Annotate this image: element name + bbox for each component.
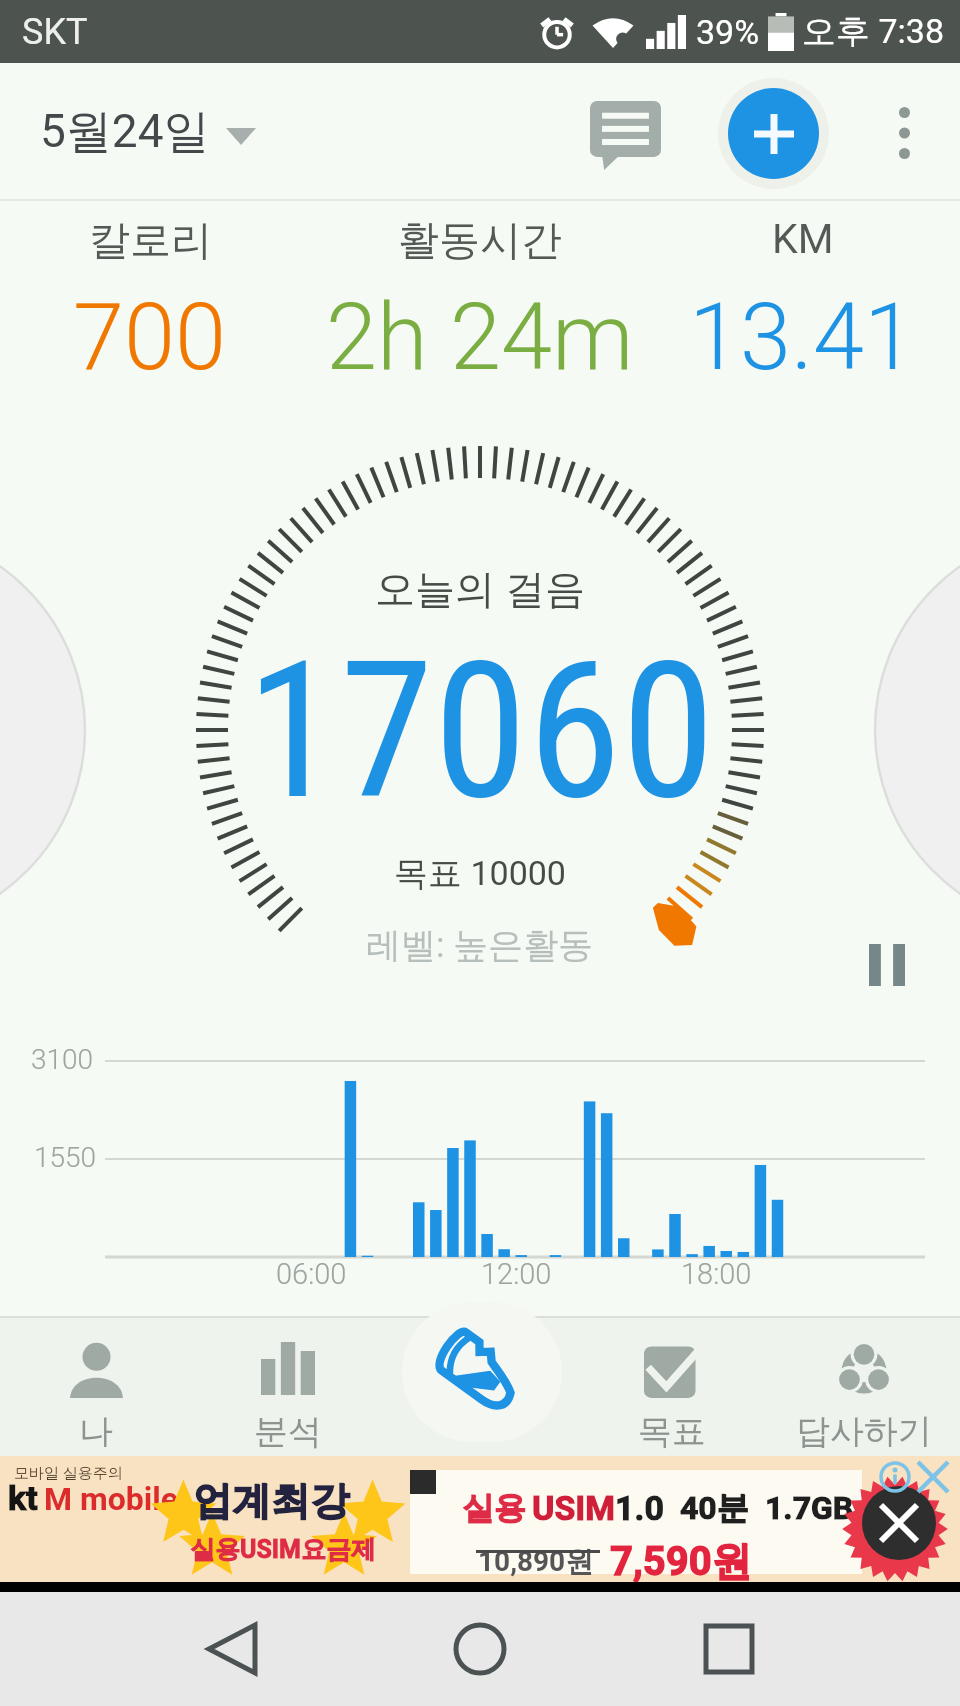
staticText: 활동시간 (398, 215, 562, 267)
button[interactable]: Close ad (862, 1486, 936, 1560)
button[interactable]: 분석 (192, 1316, 384, 1456)
staticText: kt (8, 1478, 38, 1518)
staticText: 목표 10000 (394, 852, 566, 895)
button[interactable]: 활동시간 (320, 201, 640, 400)
button[interactable]: Steps (402, 1302, 562, 1442)
staticText: USIM (532, 1488, 615, 1528)
staticText: 레벨: 높은활동 (366, 923, 594, 967)
button[interactable]: Back (185, 1603, 277, 1695)
staticText: 업계최강 (193, 1476, 349, 1525)
button[interactable]: More options (864, 89, 944, 177)
staticText: 12:00 (481, 1257, 552, 1291)
staticText: 나 (79, 1410, 113, 1453)
staticText: 목표 (638, 1410, 706, 1453)
button[interactable]: Home (434, 1603, 526, 1695)
staticText: 1.0 (615, 1488, 664, 1528)
staticText: SKT (22, 11, 88, 53)
staticText: 1550 (34, 1141, 97, 1174)
staticText: 5월24일 (40, 103, 210, 161)
button[interactable]: Pause (850, 928, 924, 1002)
button[interactable]: 칼로리 (0, 201, 300, 400)
button[interactable]: Advertisement (0, 1456, 960, 1582)
staticText: 40분 (680, 1488, 749, 1528)
button[interactable]: 나 (0, 1316, 192, 1456)
button[interactable]: KM (645, 201, 960, 400)
staticText: M mobile (44, 1480, 179, 1518)
staticText: 답사하기 (796, 1410, 932, 1453)
staticText: 분석 (254, 1410, 322, 1453)
button[interactable]: Recents (683, 1603, 775, 1695)
button[interactable]: Ad info (876, 1458, 914, 1496)
button[interactable]: 답사하기 (768, 1316, 960, 1456)
staticText: KM (772, 215, 834, 263)
staticText: 13.41 (689, 284, 916, 392)
button[interactable]: 5월24일 (24, 87, 272, 177)
staticText: 7,590원 (610, 1536, 752, 1586)
staticText: 실용 (462, 1488, 526, 1528)
button[interactable]: Add (718, 78, 829, 189)
staticText: 39% (696, 12, 760, 52)
staticText: 실용USIM요금제 (190, 1534, 377, 1565)
button[interactable]: Dismiss ad (914, 1458, 952, 1496)
staticText: 1.7GB (765, 1489, 854, 1527)
staticText: 06:00 (276, 1257, 347, 1291)
staticText: 칼로리 (89, 215, 212, 267)
staticText: 18:00 (681, 1257, 752, 1291)
staticText: 모바일 실용주의 (14, 1464, 123, 1483)
staticText: 10,890원 (478, 1544, 594, 1579)
staticText: 700 (73, 284, 227, 392)
staticText: 2h 24m (326, 284, 634, 392)
button[interactable]: Messages (578, 88, 672, 182)
button[interactable]: 목표 (576, 1316, 768, 1456)
staticText: 오후 7:38 (802, 10, 944, 53)
staticText: 오늘의 걸음 (375, 564, 585, 614)
staticText: 17060 (246, 620, 715, 843)
staticText: 3100 (31, 1043, 94, 1076)
